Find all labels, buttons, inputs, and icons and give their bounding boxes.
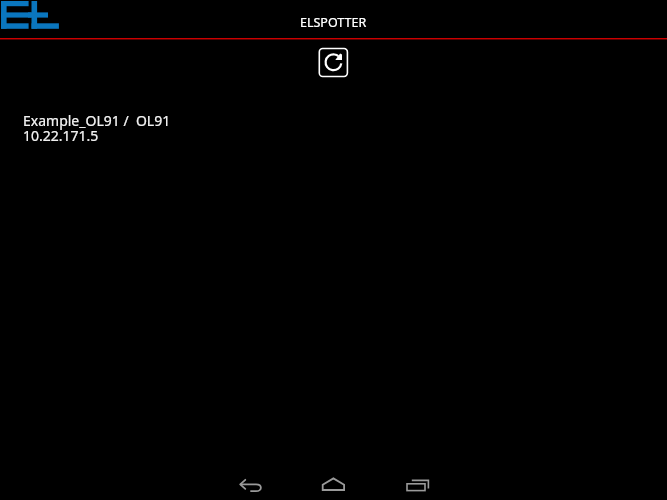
button[interactable]: Back (208, 462, 272, 500)
staticText: 10.22.171.5 (23, 126, 99, 145)
button[interactable]: Recent apps (376, 462, 440, 500)
button[interactable]: Refresh (318, 47, 350, 79)
button[interactable]: Home (292, 462, 356, 500)
staticText: Example_OL91 / OL91 (23, 111, 171, 130)
staticText: ELSPOTTER (300, 14, 367, 31)
